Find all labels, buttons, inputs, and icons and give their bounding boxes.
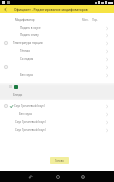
staticText: Температура порции — [13, 41, 43, 45]
button[interactable]: Готово — [50, 157, 69, 164]
button[interactable]: Back — [0, 5, 11, 13]
staticText: Соус Гречневый (соус) — [15, 128, 46, 132]
staticText: Подать в соусе — [20, 26, 41, 30]
button[interactable]: Подать в соусе — [0, 24, 114, 32]
button[interactable]: Температура порции — [0, 39, 114, 47]
staticText: Официант - Редактирование модификаторов — [14, 7, 88, 11]
staticText: Пор. — [92, 18, 98, 22]
staticText: Блюдо — [13, 93, 23, 97]
button[interactable]: Соус Гречневый (соус) — [0, 102, 114, 110]
button[interactable]: Без соуса — [0, 110, 114, 118]
button[interactable]: Home — [46, 171, 70, 182]
button[interactable]: Модификатор — [0, 16, 114, 24]
staticText: Модификатор — [15, 18, 35, 22]
staticText: Тёплая — [20, 49, 30, 53]
button[interactable]: Back — [19, 171, 43, 182]
button[interactable]: Без соуса — [0, 71, 114, 79]
button[interactable]: Тёплая — [0, 47, 114, 55]
button[interactable]: Со льдом — [0, 55, 114, 63]
button[interactable] — [0, 63, 114, 71]
staticText: Готово — [55, 159, 64, 163]
staticText: Соус Гречневый (соус) — [15, 120, 46, 124]
button[interactable]: Recent apps — [71, 171, 95, 182]
staticText: Без соуса — [20, 73, 33, 77]
staticText: Подать снизу — [20, 33, 39, 37]
button[interactable]: Соус Гречневый (соус) — [0, 118, 114, 126]
button[interactable]: Подать снизу — [0, 31, 114, 39]
staticText: Со льдом — [20, 57, 34, 61]
button[interactable]: Соус Гречневый (соус) — [0, 126, 114, 134]
staticText: Без соуса — [19, 112, 32, 116]
staticText: Мин. — [82, 18, 89, 22]
button[interactable]: Блюдо — [0, 83, 114, 100]
staticText: Соус Гречневый (соус) — [14, 104, 45, 108]
